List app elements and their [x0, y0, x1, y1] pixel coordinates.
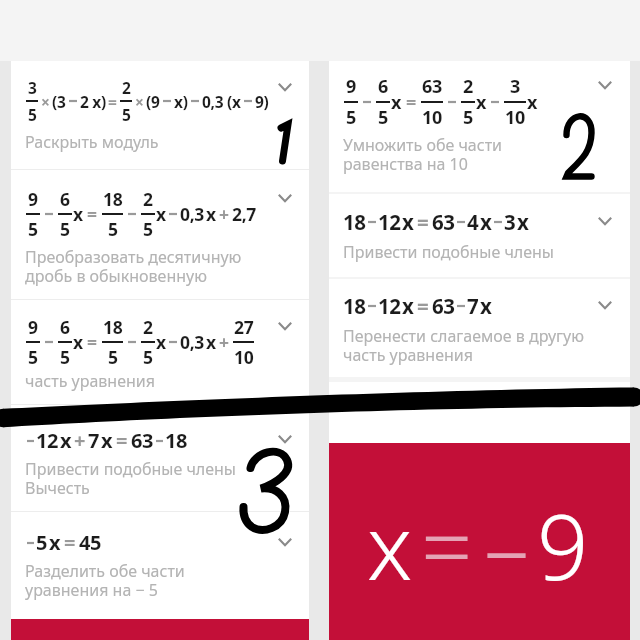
button[interactable]: Expand this step — [271, 73, 299, 101]
staticText: 12 — [378, 292, 401, 320]
staticText: = — [116, 427, 128, 454]
staticText: 0,3 (x — [202, 91, 241, 112]
staticText: 2,7 — [232, 202, 256, 226]
staticText: 45 — [79, 529, 102, 556]
staticText: 2 x) — [80, 91, 106, 112]
staticText: 5 — [122, 104, 131, 125]
staticText: 9 — [28, 187, 38, 211]
staticText: часть уравнения — [25, 370, 155, 392]
staticText: x — [206, 202, 216, 226]
button[interactable]: Expand this step — [591, 291, 619, 319]
staticText: + — [219, 330, 229, 354]
staticText: 5 — [28, 217, 38, 241]
staticText: (3 — [52, 91, 66, 112]
staticText: 9 — [346, 74, 356, 99]
staticText: x — [480, 292, 492, 320]
staticText: 12 — [378, 208, 401, 236]
staticText: x — [156, 330, 166, 354]
staticText: x — [73, 330, 83, 354]
staticText: 2 — [143, 187, 153, 211]
staticText: 18 — [103, 315, 123, 339]
staticText: 63 — [432, 208, 455, 236]
staticText: (9 — [146, 91, 160, 112]
staticText: Преобразовать десятичную дробь в обыкнов… — [25, 246, 242, 287]
button[interactable]: Expand this step — [271, 425, 299, 453]
staticText: 10 — [234, 345, 254, 369]
staticText: Умножить обе части равенства на 10 — [343, 134, 503, 175]
staticText: 0,3 — [180, 330, 204, 354]
staticText: 63 — [432, 292, 455, 320]
staticText: 5 — [143, 217, 153, 241]
staticText: x — [206, 330, 216, 354]
staticText: 12 — [36, 427, 59, 454]
button[interactable]: Expand this step — [591, 71, 619, 99]
staticText: 18 — [343, 292, 366, 320]
staticText: – — [484, 484, 529, 607]
staticText: 18 — [103, 187, 123, 211]
staticText: 63 — [422, 74, 442, 99]
staticText: 6 — [60, 315, 70, 339]
button[interactable]: 9 — [11, 170, 309, 299]
staticText: 5 — [28, 104, 37, 125]
staticText: Привести подобные члены Вычесть — [25, 458, 237, 499]
staticText: 9 — [28, 315, 38, 339]
staticText: 6 — [378, 74, 388, 99]
staticText: 27 — [234, 315, 254, 339]
staticText: x — [101, 427, 113, 454]
button[interactable]: Expand this step — [271, 184, 299, 212]
staticText: x — [402, 292, 414, 320]
button[interactable]: Expand this step — [591, 207, 619, 235]
staticText: x — [402, 208, 414, 236]
button[interactable]: 18 — [329, 279, 630, 377]
staticText: × — [41, 91, 50, 112]
staticText: + — [74, 427, 86, 454]
button[interactable]: Expand this step — [271, 528, 299, 556]
button[interactable]: 3 — [11, 61, 309, 169]
staticText: x — [156, 202, 166, 226]
staticText: x — [73, 202, 83, 226]
staticText: x — [527, 90, 538, 115]
button[interactable]: 9 — [329, 61, 630, 192]
staticText: 3 — [510, 74, 520, 99]
staticText: 5 — [463, 105, 473, 130]
staticText: x — [517, 208, 529, 236]
button[interactable]: 12 — [11, 405, 309, 511]
staticText: 3 — [28, 77, 37, 98]
staticText: x — [367, 484, 413, 607]
staticText: 9) — [255, 91, 269, 112]
staticText: x — [49, 529, 61, 556]
staticText: 2 — [122, 77, 131, 98]
button[interactable]: Expand this step — [271, 312, 299, 340]
staticText: 10 — [505, 105, 525, 130]
staticText: Перенести слагаемое в другую часть уравн… — [343, 325, 585, 366]
staticText: x) — [174, 91, 188, 112]
staticText: 7 — [88, 427, 100, 454]
staticText: = — [64, 529, 76, 556]
staticText: 7 — [467, 292, 479, 320]
staticText: = — [417, 292, 429, 320]
staticText: 6 — [60, 187, 70, 211]
staticText: = — [87, 330, 97, 354]
staticText: 5 — [378, 105, 388, 130]
button[interactable]: x — [329, 443, 630, 640]
staticText: 5 — [143, 345, 153, 369]
staticText: 5 — [346, 105, 356, 130]
button[interactable]: 18 — [329, 194, 630, 277]
staticText: x — [391, 90, 402, 115]
staticText: 63 — [131, 427, 154, 454]
staticText: x — [480, 208, 492, 236]
staticText: x — [60, 427, 72, 454]
staticText: 9 — [537, 484, 589, 607]
button[interactable]: 9 — [11, 300, 309, 404]
staticText: Раскрыть модуль — [25, 131, 159, 153]
staticText: 5 — [60, 217, 70, 241]
staticText: 5 — [36, 529, 48, 556]
staticText: x — [476, 90, 487, 115]
staticText: 5 — [28, 345, 38, 369]
staticText: = — [87, 202, 97, 226]
staticText: 18 — [343, 208, 366, 236]
staticText: 0,3 — [180, 202, 204, 226]
staticText: + — [219, 202, 229, 226]
staticText: = — [417, 208, 429, 236]
button[interactable]: 5 — [11, 512, 309, 617]
